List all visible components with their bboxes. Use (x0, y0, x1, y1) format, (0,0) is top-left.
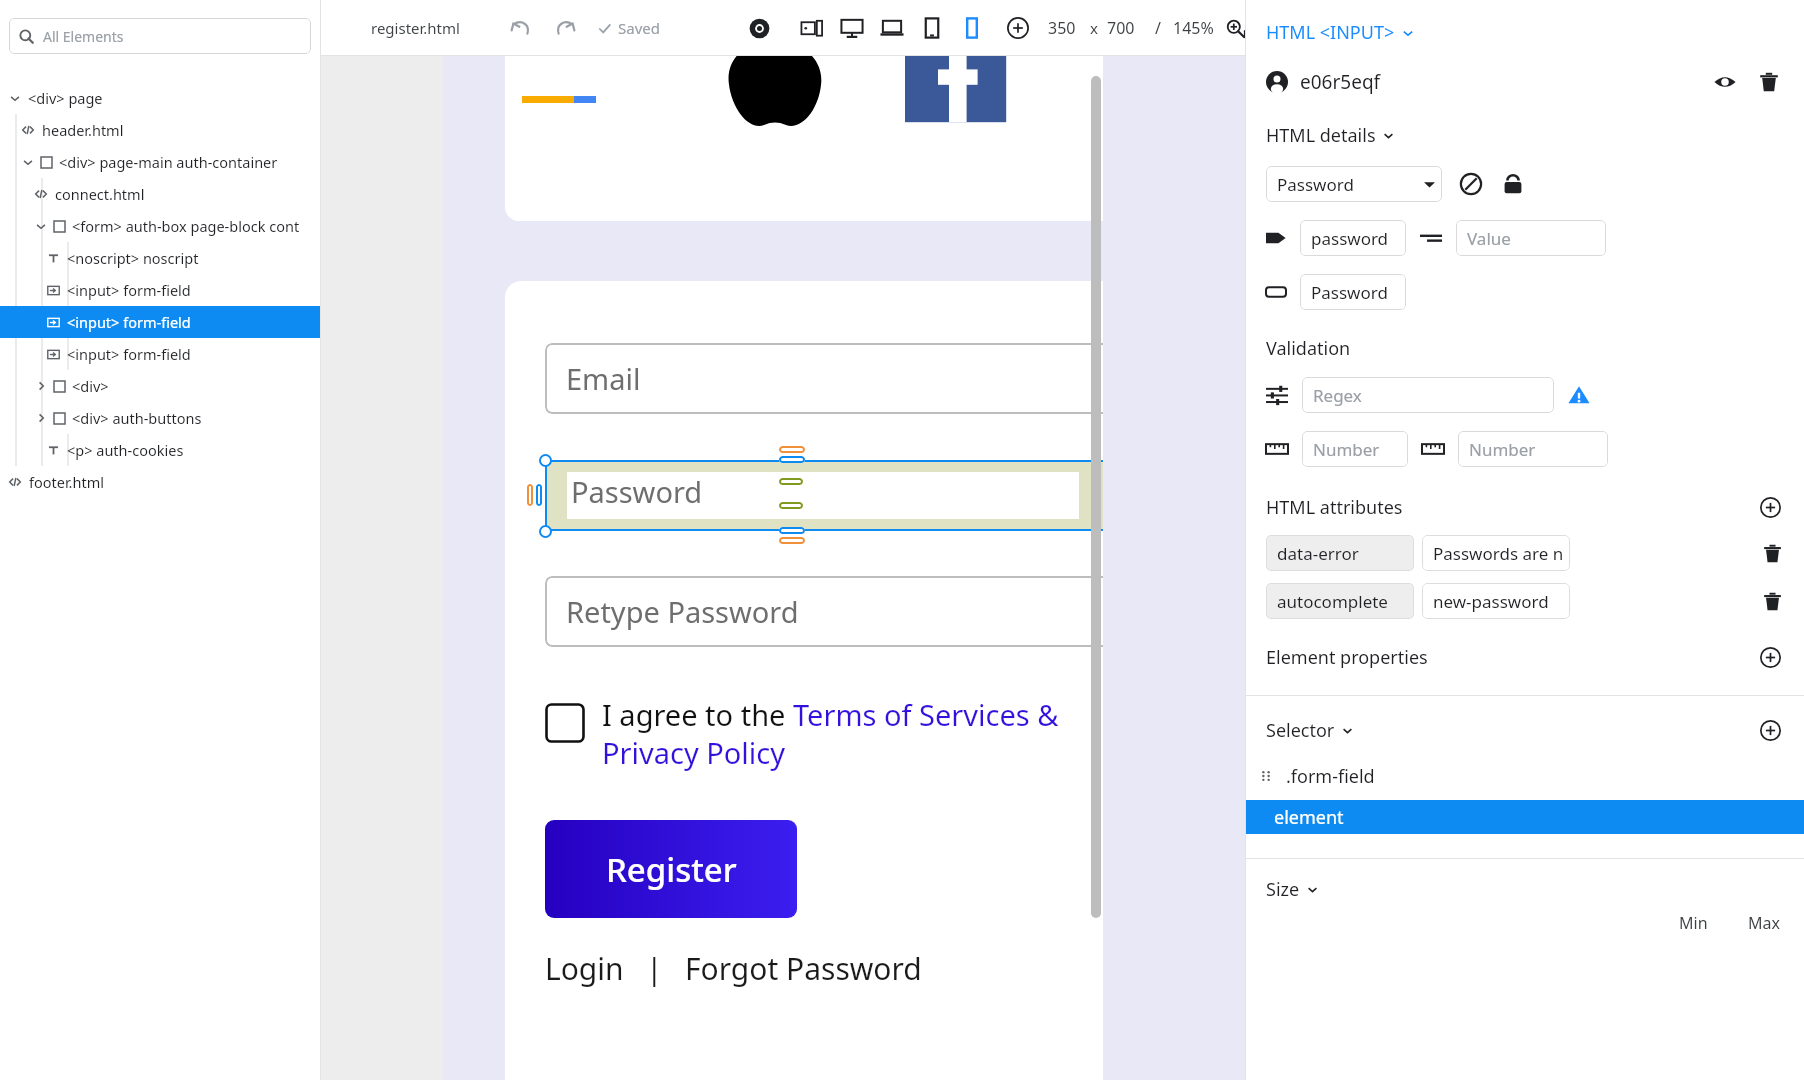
staticText: register.html (371, 18, 460, 38)
button[interactable]: Required (1500, 171, 1526, 197)
button[interactable]: Redo (550, 13, 580, 43)
button[interactable]: HTML <INPUT> (1266, 20, 1415, 45)
staticText: Validation (1266, 336, 1351, 361)
button[interactable]: <form> auth-box page-block cont (0, 210, 320, 242)
button[interactable]: I agree to the Terms of Services & Priva… (545, 695, 1133, 772)
staticText: footer.html (29, 472, 104, 492)
button[interactable]: Password (1300, 274, 1406, 310)
button[interactable]: <noscript> noscript (0, 242, 320, 274)
staticText: HTML details (1266, 123, 1376, 148)
staticText: <div> (72, 376, 109, 396)
button[interactable]: footer.html (0, 466, 320, 498)
button[interactable]: Delete attribute (1758, 587, 1786, 615)
staticText: header.html (42, 120, 124, 140)
button[interactable]: password (1300, 220, 1406, 256)
button[interactable]: Register (545, 820, 797, 918)
button[interactable]: register.html (369, 16, 462, 40)
staticText: Register (606, 847, 737, 892)
button[interactable]: Password (545, 460, 1123, 531)
staticText: data-error (1277, 542, 1359, 565)
button[interactable]: All Elements (9, 18, 311, 54)
button[interactable]: autocomplete (1266, 583, 1414, 619)
staticText: <div> page (28, 88, 103, 108)
button[interactable]: Login (545, 948, 624, 989)
button[interactable]: <p> auth-cookies (0, 434, 320, 466)
staticText: Forgot Password (685, 948, 922, 989)
button[interactable]: Tablet (916, 12, 948, 44)
button[interactable]: Size (1266, 877, 1319, 902)
button[interactable]: Saved (598, 18, 660, 38)
button[interactable]: Value (1456, 220, 1606, 256)
button[interactable]: Disabled (1458, 171, 1484, 197)
button[interactable]: Selector (1266, 718, 1354, 743)
button[interactable]: Add (1756, 716, 1784, 744)
staticText: Number (1469, 438, 1536, 461)
staticText: autocomplete (1277, 590, 1388, 613)
staticText: <p> auth-cookies (67, 440, 184, 460)
button[interactable]: Delete (1754, 67, 1784, 97)
button[interactable]: Retype Password (545, 576, 1123, 647)
button[interactable]: Preview (742, 11, 776, 45)
staticText: <form> auth-box page-block cont (72, 216, 300, 236)
staticText: password (1311, 227, 1389, 250)
staticText: 350 (1048, 17, 1076, 39)
staticText: 145% (1173, 17, 1214, 39)
button[interactable]: data-error (1266, 535, 1414, 571)
button[interactable]: Number (1458, 431, 1608, 467)
button[interactable]: connect.html (0, 178, 320, 210)
button[interactable]: Desktop (836, 12, 868, 44)
staticText: Login (545, 948, 624, 989)
button[interactable]: Forgot Password (685, 948, 922, 989)
staticText: Max (1748, 912, 1780, 934)
button[interactable]: <div> page (0, 82, 320, 114)
staticText: Min (1679, 912, 1708, 934)
button[interactable]: Mobile (956, 12, 988, 44)
staticText: <div> page-main auth-container (59, 152, 278, 172)
button[interactable]: header.html (0, 114, 320, 146)
staticText: Password (1311, 281, 1388, 304)
button[interactable]: Add breakpoint (1002, 12, 1034, 44)
staticText: HTML attributes (1266, 495, 1403, 520)
button[interactable]: Undo (506, 13, 536, 43)
button[interactable]: HTML details (1266, 123, 1395, 148)
button[interactable]: Add (1756, 643, 1784, 671)
staticText: | (646, 948, 663, 989)
button[interactable]: <div> auth-buttons (0, 402, 320, 434)
button[interactable]: <input> form-field (0, 338, 320, 370)
staticText: Password (571, 472, 703, 511)
button[interactable]: element (1246, 800, 1804, 834)
button[interactable]: Responsive (796, 12, 828, 44)
button[interactable]: <div> page-main auth-container (0, 146, 320, 178)
staticText: <div> auth-buttons (72, 408, 202, 428)
button[interactable]: new-password (1422, 583, 1570, 619)
staticText: Passwords are n (1433, 542, 1564, 565)
staticText: Size (1266, 877, 1300, 902)
button[interactable]: <input> form-field (0, 274, 320, 306)
button[interactable]: Warning (1566, 382, 1592, 408)
staticText: Selector (1266, 718, 1335, 743)
button[interactable]: Password (password) (1266, 166, 1442, 202)
button[interactable]: <input> form-field (0, 306, 320, 338)
button[interactable]: .form-field (1246, 762, 1804, 790)
staticText: <input> form-field (67, 344, 191, 364)
button[interactable]: Passwords are n (1422, 535, 1570, 571)
button[interactable]: Number (1302, 431, 1408, 467)
button[interactable]: Regex (1302, 377, 1554, 413)
staticText: All Elements (43, 27, 124, 46)
button[interactable]: Email (545, 343, 1123, 414)
staticText: Number (1313, 438, 1380, 461)
staticText: element (1274, 805, 1344, 830)
button[interactable]: Laptop (876, 12, 908, 44)
staticText: new-password (1433, 590, 1549, 613)
staticText: I agree to the Terms of Services & Priva… (602, 695, 1133, 772)
staticText: Saved (618, 18, 660, 38)
staticText: <input> form-field (67, 280, 191, 300)
staticText: e06r5eqf (1300, 69, 1381, 95)
button[interactable]: Toggle visibility (1710, 67, 1740, 97)
button[interactable]: Delete attribute (1758, 539, 1786, 567)
button[interactable]: <div> (0, 370, 320, 402)
staticText: Password (password) (1277, 173, 1420, 196)
button[interactable]: Zoom in (1226, 13, 1245, 43)
staticText: / (1155, 17, 1161, 39)
button[interactable]: Add (1756, 493, 1784, 521)
